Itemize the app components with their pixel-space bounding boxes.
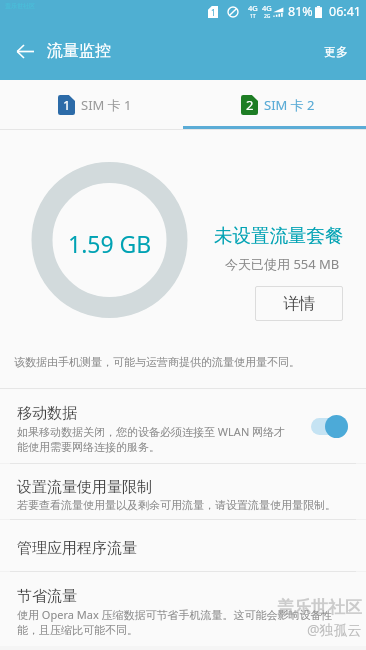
button[interactable]: 节省流量 [0, 572, 366, 646]
staticText: 2G [264, 13, 271, 20]
staticText: 未设置流量套餐 [214, 224, 344, 247]
staticText: @独孤云 [307, 620, 362, 639]
staticText: 1 [63, 96, 71, 114]
staticText: 06:41 [329, 3, 361, 20]
staticText: 节省流量 [17, 587, 77, 606]
button[interactable]: Back [0, 26, 50, 76]
staticText: SIM 卡 1 [81, 96, 132, 114]
staticText: 该数据由手机测量，可能与运营商提供的流量使用量不同。 [14, 355, 300, 369]
staticText: 1 [211, 7, 216, 18]
staticText: SIM 卡 2 [264, 96, 315, 114]
staticText: 81% [288, 3, 313, 20]
button[interactable]: 管理应用程序流量 [0, 520, 366, 571]
staticText: 盖乐世社区 [277, 597, 362, 618]
staticText: 如果移动数据关闭，您的设备必须连接至 WLAN 网络才能使用需要网络连接的服务。 [17, 424, 288, 454]
staticText: 4G [248, 3, 258, 13]
staticText: 流量监控 [47, 41, 111, 61]
staticText: 1.59 GB [68, 228, 152, 259]
staticText: 2 [246, 96, 254, 114]
staticText: 使用 Opera Max 压缩数据可节省手机流量。这可能会影响设备性能，且压缩比… [17, 607, 350, 637]
staticText: 今天已使用 554 MB [225, 255, 340, 273]
staticText: 若要查看流量使用量以及剩余可用流量，请设置流量使用量限制。 [17, 498, 336, 512]
button[interactable]: 1 [0, 80, 183, 130]
button[interactable]: 2 [183, 80, 366, 130]
button[interactable]: 移动数据 [0, 389, 366, 463]
staticText: 1T [250, 13, 256, 20]
button[interactable]: 更多 [306, 22, 366, 80]
staticText: 4G [262, 3, 272, 13]
staticText: 详情 [283, 294, 315, 314]
button[interactable]: 设置流量使用量限制 [0, 464, 366, 519]
staticText: 移动数据 [17, 404, 77, 423]
staticText: 更多 [324, 44, 348, 59]
staticText: 管理应用程序流量 [17, 539, 137, 558]
button[interactable]: 详情 [255, 286, 343, 321]
staticText: 设置流量使用量限制 [17, 478, 152, 497]
staticText: 盖乐世社区 [5, 2, 35, 10]
